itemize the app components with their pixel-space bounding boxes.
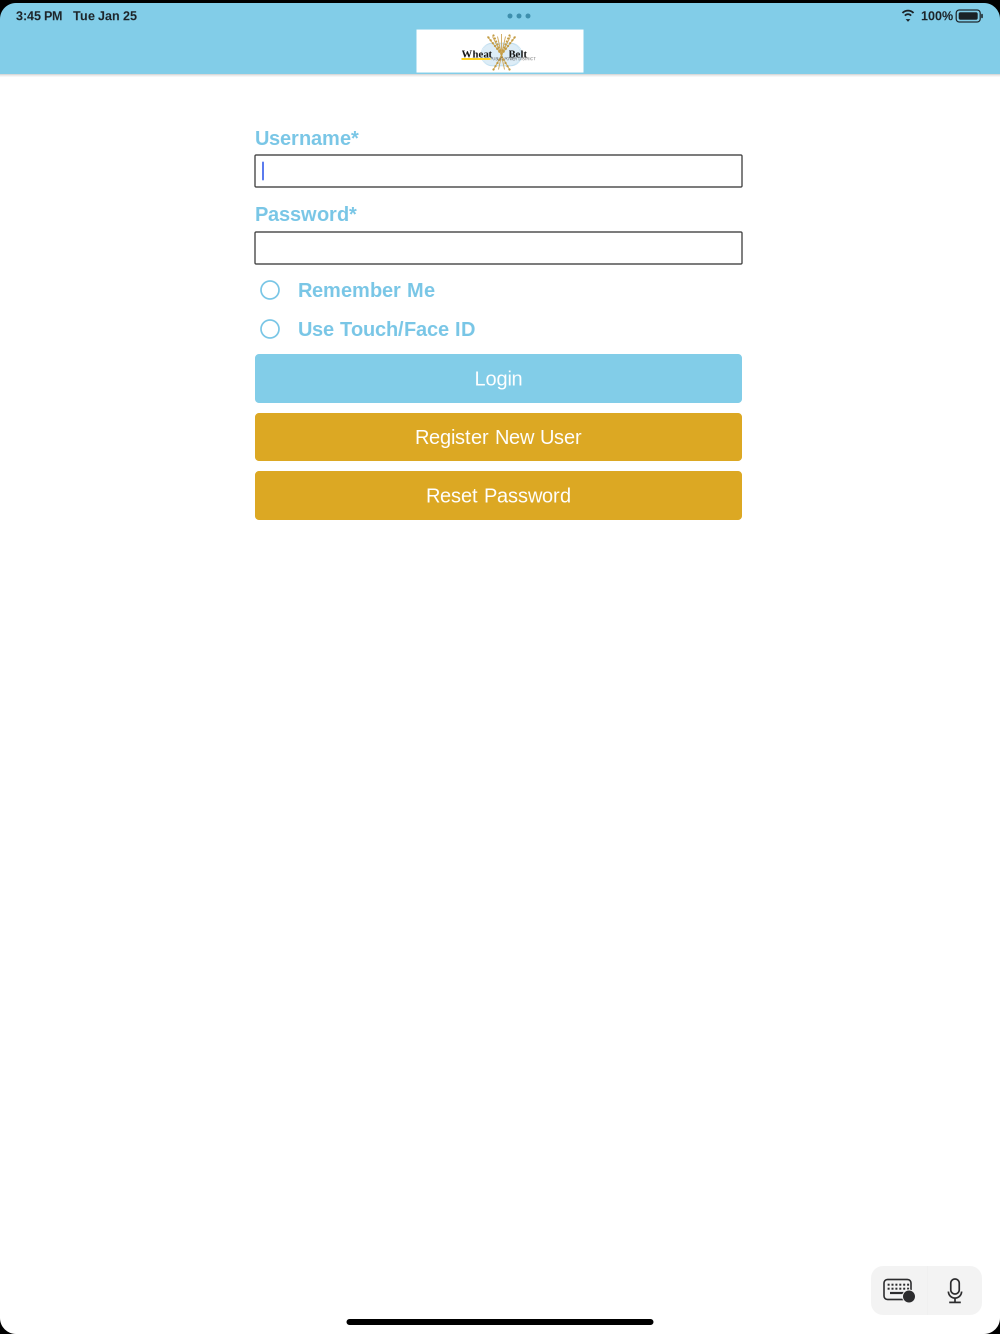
staticText: Register New User bbox=[415, 426, 582, 448]
staticText: Login bbox=[474, 367, 522, 390]
staticText: Remember Me bbox=[298, 279, 435, 301]
staticText: Belt bbox=[508, 48, 527, 60]
staticText: Reset Password bbox=[426, 484, 571, 507]
button[interactable]: Register New User bbox=[255, 413, 742, 461]
button[interactable]: Show keyboard bbox=[871, 1266, 927, 1315]
button[interactable]: Reset Password bbox=[255, 471, 742, 520]
staticText: 100% bbox=[921, 9, 953, 23]
staticText: 3:45 PM bbox=[16, 9, 62, 23]
button[interactable]: Dictate bbox=[928, 1266, 982, 1315]
button[interactable]: Remember Me bbox=[255, 277, 742, 303]
button[interactable]: Use Touch/Face ID bbox=[255, 316, 742, 342]
staticText: Password* bbox=[255, 203, 357, 225]
staticText: Username* bbox=[255, 127, 359, 149]
staticText: Use Touch/Face ID bbox=[298, 318, 475, 340]
button[interactable]: Login bbox=[255, 354, 742, 403]
staticText: Tue Jan 25 bbox=[73, 9, 137, 23]
staticText: PUBLIC POWER DISTRICT bbox=[490, 57, 535, 61]
staticText: Wheat bbox=[461, 48, 492, 60]
